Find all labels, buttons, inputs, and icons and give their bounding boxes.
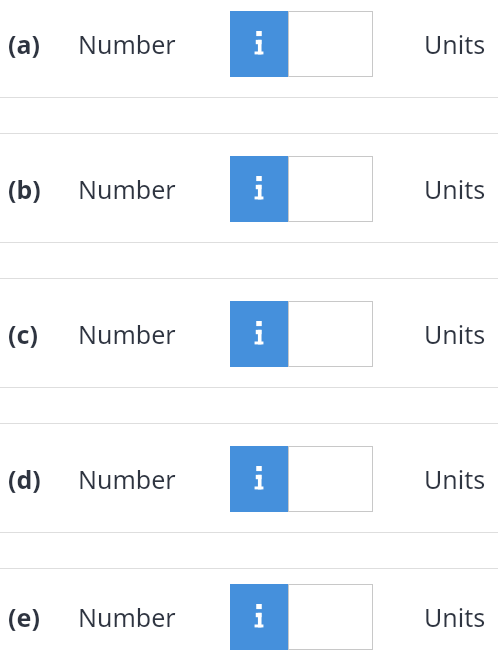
staticText: Units	[424, 462, 486, 496]
button[interactable]	[288, 11, 373, 77]
staticText: Number	[78, 172, 176, 206]
button[interactable]: Info about (c)	[230, 301, 288, 367]
staticText: Number	[78, 317, 176, 351]
staticText: (a)	[8, 27, 40, 61]
staticText: Units	[424, 317, 486, 351]
staticText: (c)	[8, 317, 38, 351]
staticText: Number	[78, 27, 176, 61]
staticText: (d)	[8, 462, 41, 496]
staticText: Number	[78, 462, 176, 496]
staticText: Units	[424, 27, 486, 61]
button[interactable]	[288, 156, 373, 222]
staticText: Units	[424, 600, 486, 634]
staticText: (b)	[8, 172, 41, 206]
button[interactable]	[288, 301, 373, 367]
staticText: Number	[78, 600, 176, 634]
button[interactable]: Info about (b)	[230, 156, 288, 222]
button[interactable]: Info about (d)	[230, 446, 288, 512]
button[interactable]	[288, 446, 373, 512]
button[interactable]	[288, 584, 373, 650]
button[interactable]: Info about (a)	[230, 11, 288, 77]
staticText: Units	[424, 172, 486, 206]
staticText: (e)	[8, 600, 40, 634]
button[interactable]: Info about (e)	[230, 584, 288, 650]
